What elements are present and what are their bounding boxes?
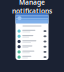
staticText: notifications [12, 6, 52, 15]
staticText: Manage [19, 0, 45, 6]
